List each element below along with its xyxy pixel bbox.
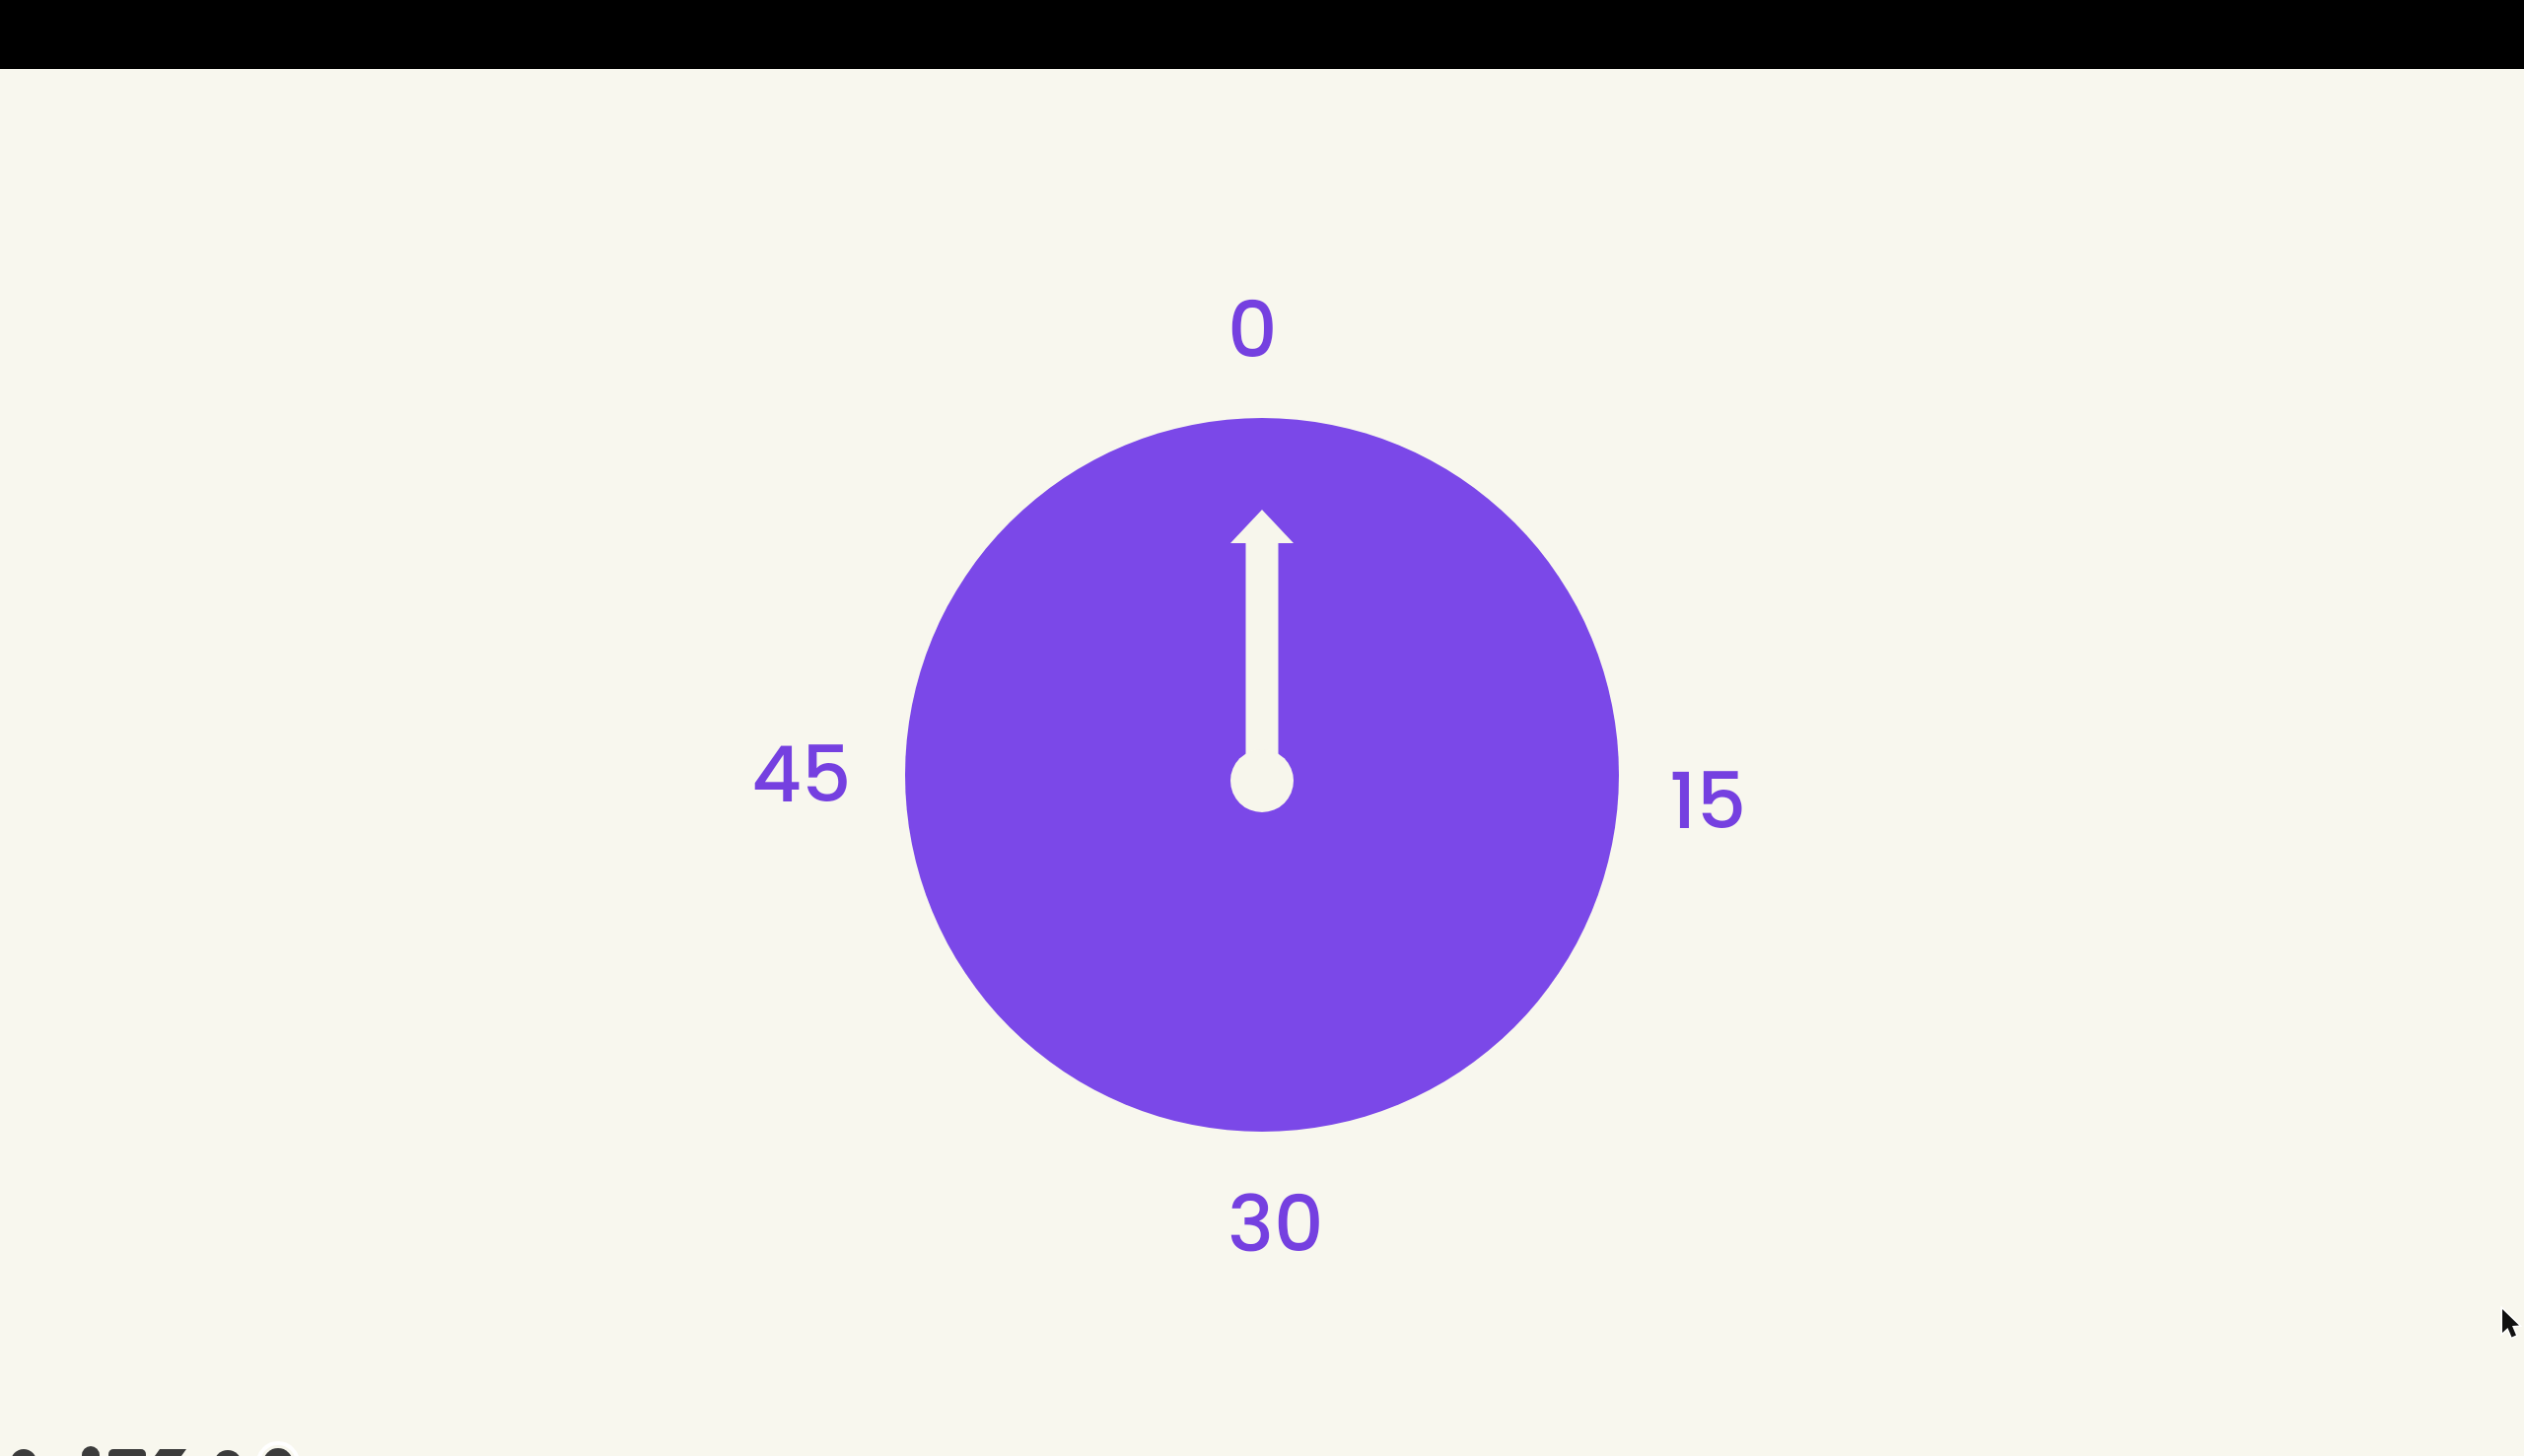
staticText: 0 <box>1227 275 1278 384</box>
staticText: 15 <box>1669 746 1747 856</box>
staticText: 30 <box>1227 1169 1324 1279</box>
button[interactable] <box>905 418 1619 1132</box>
staticText: 45 <box>751 720 852 829</box>
